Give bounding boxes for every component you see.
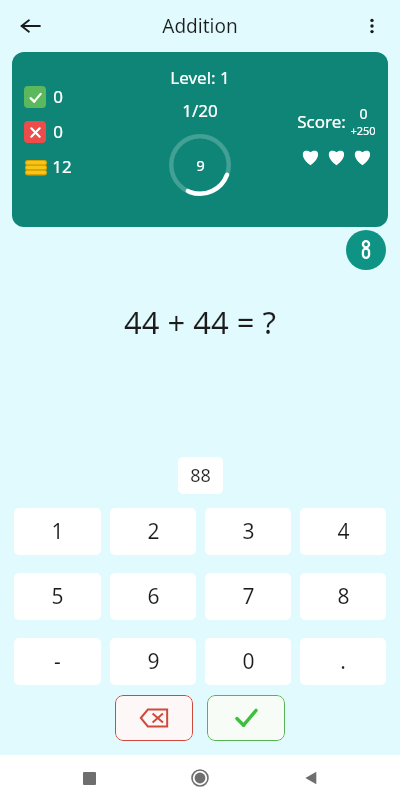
staticText: 44 + 44 = ?: [0, 301, 400, 343]
staticText: 88: [190, 463, 211, 488]
button[interactable]: -: [14, 638, 101, 685]
button[interactable]: Submit answer: [207, 695, 285, 741]
staticText: 0: [53, 120, 63, 143]
button[interactable]: 0: [205, 638, 291, 685]
staticText: 6: [147, 582, 160, 611]
button[interactable]: 5: [14, 573, 101, 620]
button[interactable]: 8: [300, 573, 386, 620]
staticText: Score:: [297, 110, 346, 133]
staticText: 3: [242, 517, 255, 546]
button[interactable]: Back: [10, 6, 50, 46]
button[interactable]: Info: [346, 230, 386, 270]
staticText: .: [340, 647, 346, 676]
staticText: 7: [242, 582, 255, 611]
button[interactable]: 9: [110, 638, 196, 685]
staticText: Level: 1: [170, 66, 230, 89]
staticText: 1/20: [182, 99, 218, 122]
button[interactable]: .: [300, 638, 386, 685]
button[interactable]: Recent apps: [72, 761, 106, 795]
button[interactable]: 3: [205, 508, 291, 555]
staticText: 0: [359, 104, 368, 123]
staticText: +250: [350, 123, 376, 138]
button[interactable]: 1: [14, 508, 101, 555]
staticText: 12: [52, 155, 72, 178]
button[interactable]: Back: [294, 761, 328, 795]
staticText: 4: [337, 517, 350, 546]
staticText: -: [54, 647, 61, 676]
button[interactable]: Home: [183, 761, 217, 795]
button[interactable]: 7: [205, 573, 291, 620]
staticText: 0: [242, 647, 255, 676]
staticText: 9: [196, 155, 205, 175]
button[interactable]: 0: [12, 52, 388, 227]
staticText: 9: [147, 647, 160, 676]
button[interactable]: 4: [300, 508, 386, 555]
staticText: 8: [337, 582, 350, 611]
staticText: 0: [53, 85, 63, 108]
button[interactable]: 2: [110, 508, 196, 555]
button[interactable]: 88: [178, 457, 223, 494]
button[interactable]: 6: [110, 573, 196, 620]
button[interactable]: More options: [352, 6, 392, 46]
staticText: 1: [51, 517, 64, 546]
staticText: 2: [147, 517, 160, 546]
button[interactable]: Backspace: [115, 695, 193, 741]
staticText: Addition: [162, 13, 238, 39]
staticText: 5: [51, 582, 64, 611]
